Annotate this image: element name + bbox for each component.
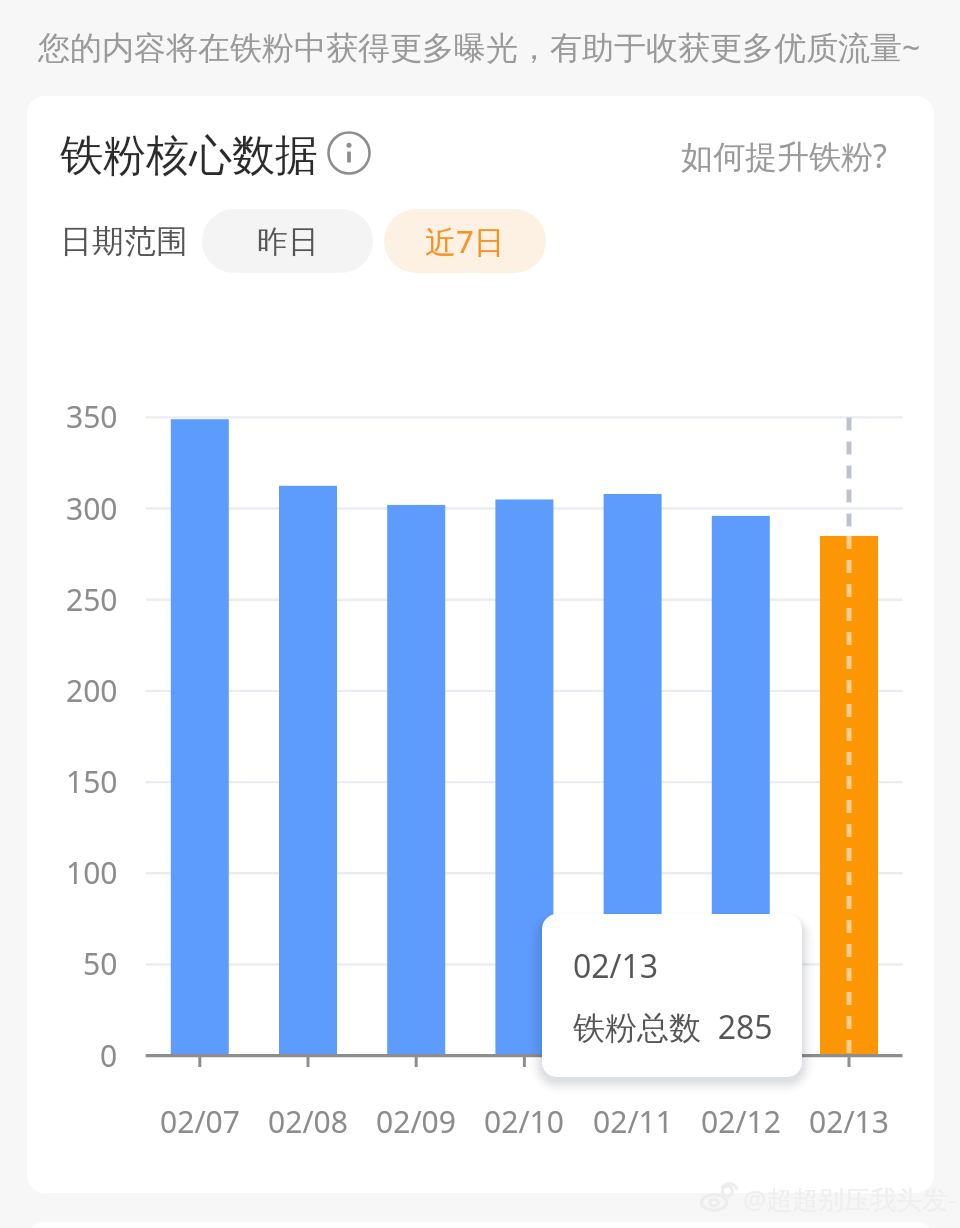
staticText: 350 [66, 396, 118, 437]
button[interactable]: 铁粉核心数据说明 [327, 131, 371, 175]
staticText: 300 [66, 488, 118, 529]
staticText: 100 [66, 852, 118, 893]
staticText: 02/11 [593, 1101, 673, 1142]
staticText: 250 [66, 579, 118, 620]
staticText: 昨日 [257, 222, 319, 261]
staticText: 如何提升铁粉? [681, 134, 887, 178]
button[interactable]: 近7日 [384, 209, 546, 273]
staticText: 铁粉总数 285 [573, 1005, 773, 1049]
staticText: 02/08 [268, 1101, 348, 1142]
staticText: 02/07 [160, 1101, 240, 1142]
staticText: 近7日 [425, 220, 505, 262]
staticText: 02/13 [573, 944, 659, 988]
staticText: 铁粉核心数据 [60, 129, 318, 183]
staticText: 02/09 [376, 1101, 456, 1142]
button[interactable]: 如何提升铁粉? [647, 124, 887, 188]
staticText: 您的内容将在铁粉中获得更多曝光，有助于收获更多优质流量~ [38, 25, 921, 69]
button[interactable]: 昨日 [202, 209, 373, 273]
staticText: 02/13 [809, 1101, 889, 1142]
staticText: 0 [100, 1035, 118, 1076]
staticText: 日期范围 [60, 221, 188, 261]
staticText: 50 [83, 943, 118, 984]
staticText: 02/10 [484, 1101, 564, 1142]
staticText: 150 [66, 761, 118, 802]
staticText: 200 [66, 670, 118, 711]
staticText: @超超别压我头发- [743, 1181, 957, 1215]
staticText: 02/12 [701, 1101, 781, 1142]
